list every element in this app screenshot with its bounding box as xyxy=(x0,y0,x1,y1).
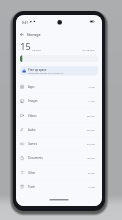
staticText: GB used xyxy=(32,48,41,51)
staticText: 800 MB xyxy=(87,114,95,117)
staticText: Review apps and files you no longer use xyxy=(28,72,64,74)
button[interactable]: Images xyxy=(16,94,102,108)
staticText: Audio xyxy=(28,128,36,132)
staticText: Games xyxy=(28,142,37,146)
button[interactable]: Audio xyxy=(16,122,102,137)
button[interactable]: Apps xyxy=(16,80,102,94)
button[interactable]: Other xyxy=(16,165,102,180)
staticText: 15 xyxy=(20,40,31,53)
staticText: 12 GB xyxy=(88,85,95,88)
staticText: 310 MB xyxy=(87,142,95,145)
button[interactable]: Documents xyxy=(16,151,102,165)
button[interactable]: Trash xyxy=(16,179,102,194)
staticText: 12 MB xyxy=(88,185,95,188)
staticText: 9:41 xyxy=(22,20,28,24)
staticText: Storage xyxy=(27,32,41,37)
staticText: Trash xyxy=(28,185,35,189)
staticText: 420 MB xyxy=(87,128,95,131)
staticText: 128 GB total xyxy=(82,48,95,51)
staticText: Free up space xyxy=(28,67,47,71)
staticText: Videos xyxy=(28,113,37,117)
staticText: 1.1 GB xyxy=(88,100,95,103)
button[interactable]: Free up space xyxy=(20,66,98,76)
staticText: Other xyxy=(28,170,36,174)
staticText: Documents xyxy=(28,156,43,160)
staticText: Apps xyxy=(28,85,34,89)
staticText: 128 MB xyxy=(87,157,95,160)
staticText: 96 MB xyxy=(88,171,95,174)
staticText: Images xyxy=(28,99,38,103)
button[interactable]: Back xyxy=(18,31,25,38)
button[interactable]: Videos xyxy=(16,108,102,123)
button[interactable]: Games xyxy=(16,137,102,151)
